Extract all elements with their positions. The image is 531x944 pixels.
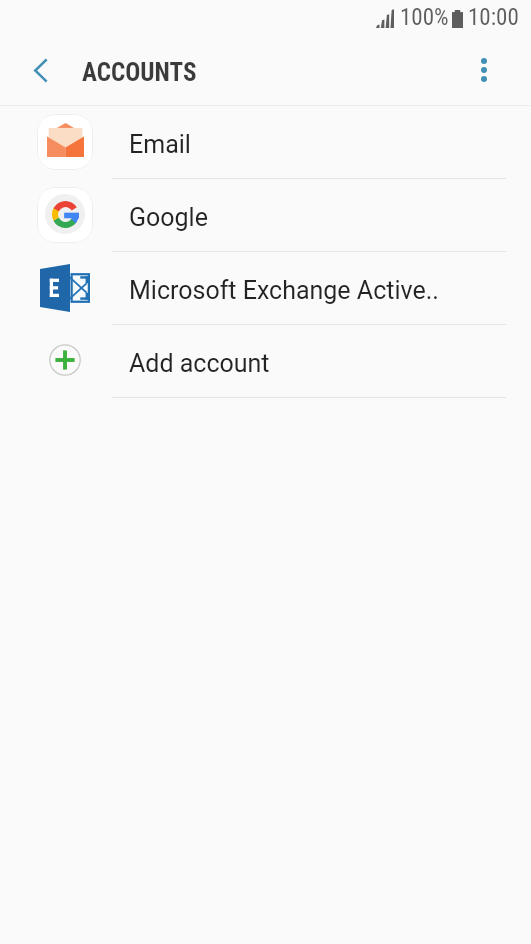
staticText: Add account xyxy=(129,349,270,378)
button[interactable]: Navigate up xyxy=(0,35,80,105)
staticText: ACCOUNTS xyxy=(82,58,197,87)
staticText: Email xyxy=(129,130,191,159)
staticText: Microsoft Exchange Active.. xyxy=(129,276,439,305)
staticText: 10:00 xyxy=(468,4,519,31)
staticText: Google xyxy=(129,203,208,232)
button[interactable]: Microsoft Exchange Active.. xyxy=(0,252,531,325)
button[interactable]: Add account xyxy=(0,325,531,398)
button[interactable]: More options xyxy=(459,35,508,105)
button[interactable]: Google xyxy=(0,179,531,252)
button[interactable]: Email xyxy=(0,106,531,179)
staticText: 100% xyxy=(400,4,449,31)
